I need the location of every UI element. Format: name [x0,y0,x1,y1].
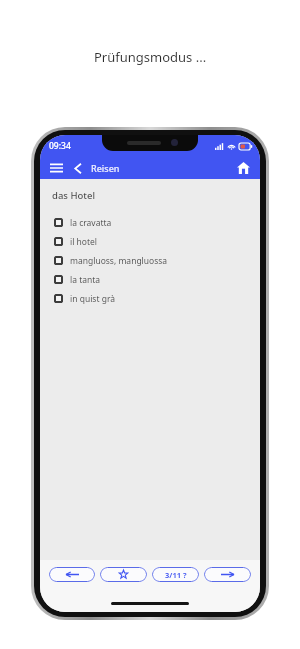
staticText: mangluoss, mangluossa [70,255,168,267]
button[interactable]: in quist grà [40,289,260,308]
button[interactable]: Menu [47,159,65,177]
staticText: il hotel [70,236,98,248]
staticText: 3/11 ? [165,570,187,580]
button[interactable]: Favourite [100,567,147,582]
button[interactable]: la cravatta [40,213,260,232]
staticText: das Hotel [52,189,95,202]
button[interactable]: la tanta [40,270,260,289]
staticText: 09:34 [49,140,71,152]
button[interactable]: mangluoss, mangluossa [40,251,260,270]
staticText: Prüfungsmodus ... [94,48,207,66]
button[interactable]: Home [233,158,253,178]
staticText: la tanta [70,274,101,286]
button[interactable]: 3/11 ? [152,567,199,582]
button[interactable]: Next [204,567,251,582]
staticText: in quist grà [70,293,116,305]
button[interactable]: il hotel [40,232,260,251]
button[interactable]: Back [68,159,86,177]
button[interactable]: Previous [49,567,95,582]
staticText: la cravatta [70,217,112,229]
staticText: Reisen [91,162,120,174]
